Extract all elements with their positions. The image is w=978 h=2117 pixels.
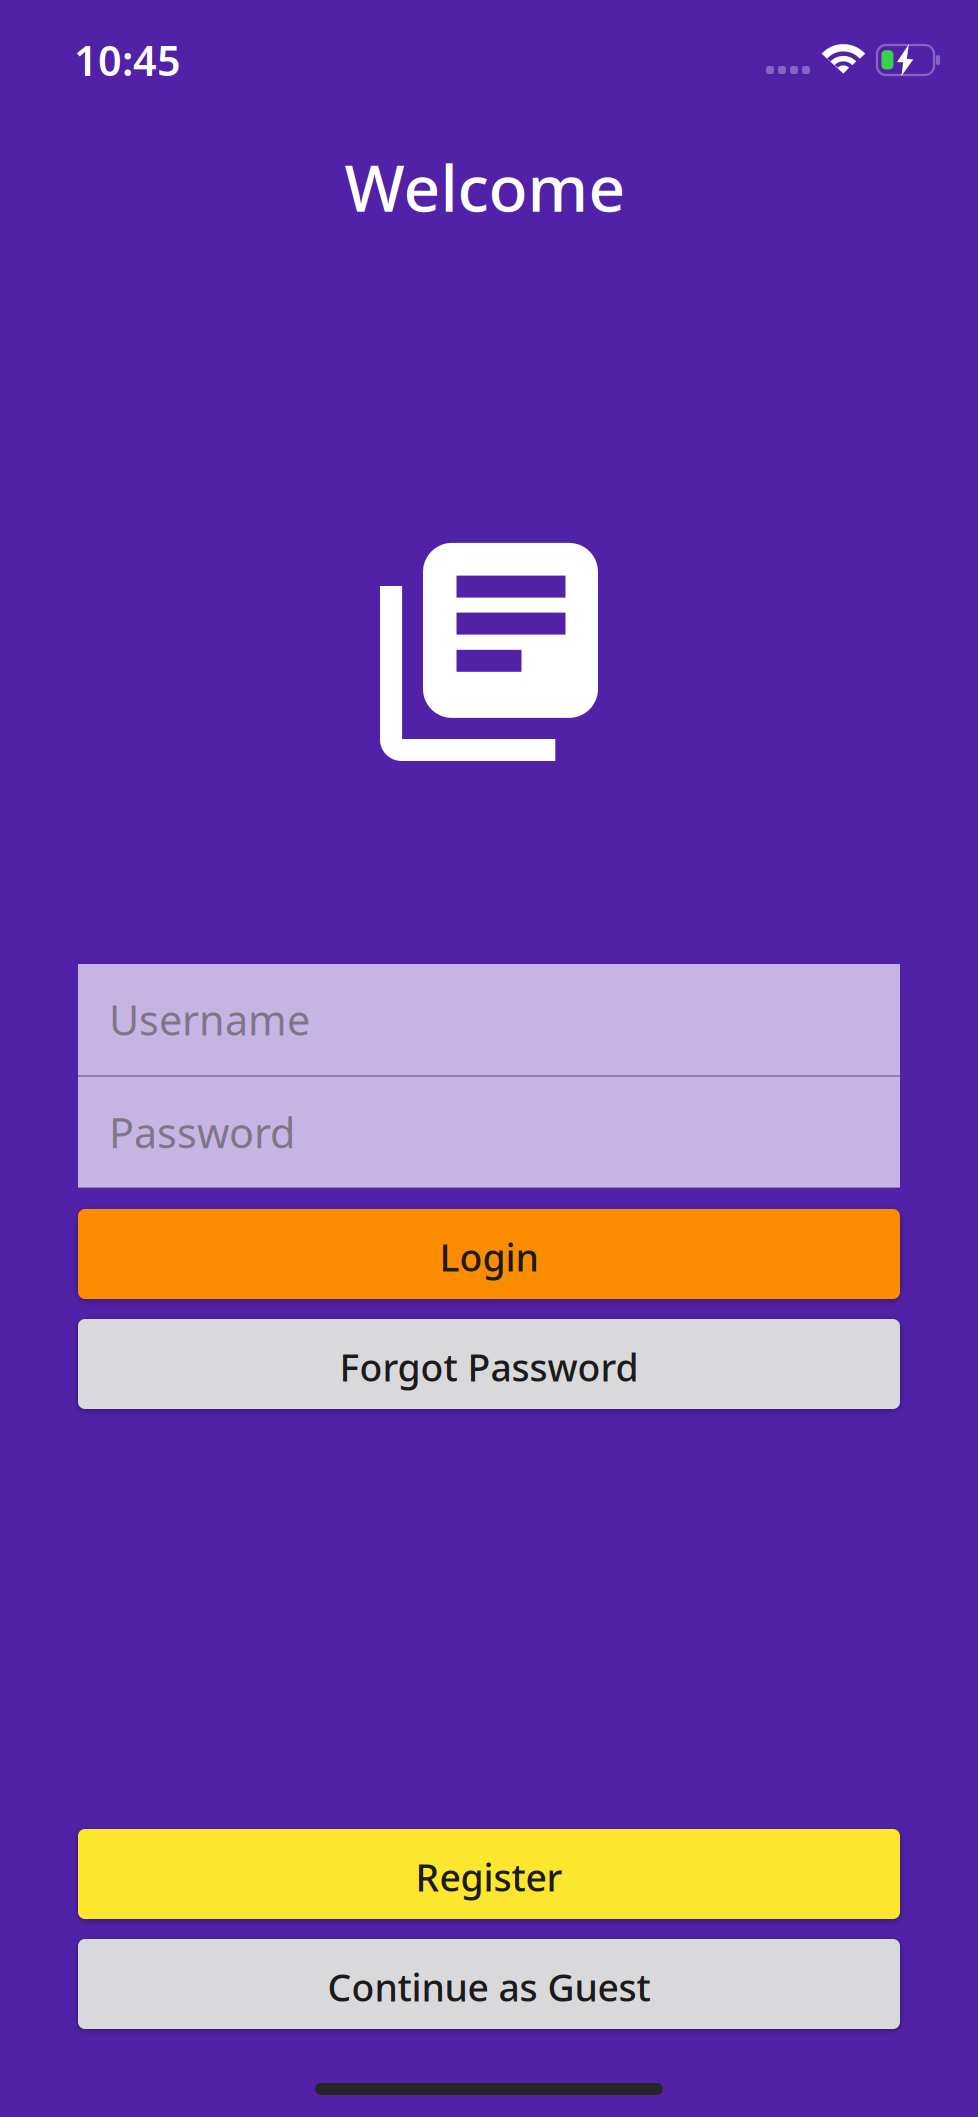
staticText: Forgot Password xyxy=(339,1342,638,1392)
button[interactable]: Username xyxy=(78,964,900,1075)
staticText: Username xyxy=(109,992,310,1047)
button[interactable]: Continue as Guest xyxy=(78,1939,900,2029)
staticText: 10:45 xyxy=(74,33,181,87)
staticText: Login xyxy=(439,1232,538,1282)
button[interactable]: Register xyxy=(78,1829,900,1919)
button[interactable]: Password xyxy=(78,1077,900,1188)
staticText: Password xyxy=(109,1105,295,1160)
staticText: Welcome xyxy=(344,144,625,229)
staticText: Continue as Guest xyxy=(327,1962,650,2012)
button[interactable]: Forgot Password xyxy=(78,1319,900,1409)
button[interactable]: Login xyxy=(78,1209,900,1299)
staticText: Register xyxy=(415,1852,562,1902)
